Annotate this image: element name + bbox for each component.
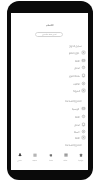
button[interactable]: طرق الدفع — [11, 49, 88, 56]
button[interactable]: الدعم والمساعدة — [11, 142, 88, 148]
button[interactable]: تعديل الملف الشخصي — [35, 32, 63, 37]
staticText: الفئات — [63, 159, 68, 162]
button[interactable]: الطلبات — [11, 80, 88, 87]
staticText: الطلبات — [73, 82, 80, 86]
staticText: الحساب — [46, 23, 54, 27]
button[interactable]: حسابي — [11, 153, 27, 170]
button[interactable]: الطلبات — [27, 153, 43, 170]
button[interactable]: السلة — [11, 128, 88, 135]
staticText: الأمان — [74, 123, 80, 127]
staticText: كلمة المرور — [69, 74, 80, 78]
staticText: اللغة — [75, 59, 80, 63]
staticText: الشروط — [73, 89, 80, 93]
staticText: السلة — [74, 130, 80, 134]
button[interactable]: السلة — [43, 153, 58, 170]
staticText: تسجيل الخروج — [69, 44, 82, 48]
button[interactable]: اللغة — [11, 57, 88, 64]
button[interactable]: الشروط — [11, 87, 88, 94]
button[interactable]: الرئيسية — [11, 105, 88, 112]
button[interactable]: كلمة المرور — [11, 72, 88, 79]
staticText: الأمان — [74, 66, 80, 70]
staticText: حسابي — [17, 159, 22, 162]
button[interactable]: اللغة — [11, 113, 88, 120]
button[interactable]: الأمان — [11, 121, 88, 128]
staticText: الطلبات — [32, 159, 38, 162]
staticText: الرئيسية — [78, 159, 84, 162]
button[interactable]: اللغة — [11, 134, 88, 141]
staticText: اللغة — [75, 115, 80, 119]
staticText: تعديل الملف الشخصي — [42, 33, 57, 36]
button[interactable]: الحساب — [11, 21, 88, 28]
staticText: الرئيسية — [72, 107, 80, 111]
staticText: اللغة — [75, 136, 80, 140]
staticText: السلة — [49, 159, 53, 162]
button[interactable]: الفئات — [58, 153, 73, 170]
staticText: الدعم والمساعدة — [65, 143, 82, 147]
button[interactable]: الرئيسية — [73, 153, 88, 170]
button[interactable]: تسجيل الخروج — [11, 43, 88, 49]
button[interactable]: الأمان — [11, 64, 88, 71]
staticText: الدعم والمساعدة — [65, 99, 82, 103]
staticText: طرق الدفع — [69, 51, 80, 55]
button[interactable]: الدعم والمساعدة — [11, 98, 88, 104]
